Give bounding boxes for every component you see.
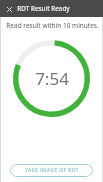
staticText: 7:54 [35, 67, 69, 90]
staticText: TAKE IMAGE OF RDT [25, 167, 79, 174]
staticText: Read result within 10 minutes. [6, 21, 99, 30]
button[interactable]: Close [4, 4, 14, 14]
staticText: RDT Result Ready [17, 4, 70, 13]
button[interactable]: TAKE IMAGE OF RDT [10, 164, 93, 177]
